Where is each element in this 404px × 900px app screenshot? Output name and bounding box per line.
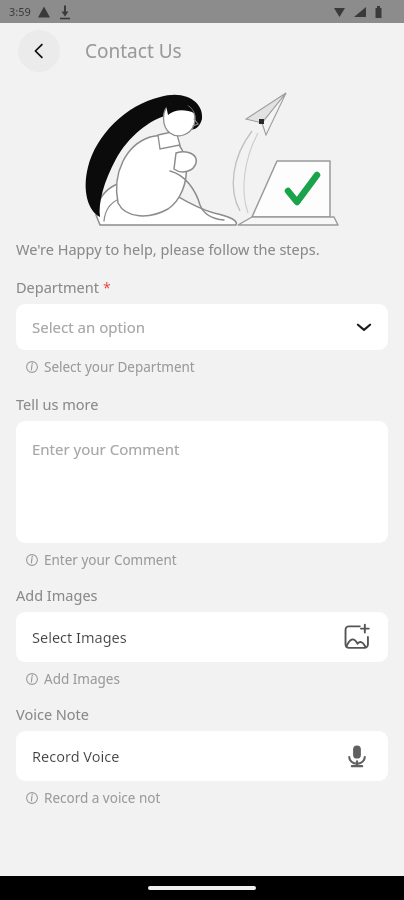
staticText: Add Images — [16, 585, 98, 605]
button[interactable]: Record Voice — [16, 731, 388, 781]
staticText: Contact Us — [85, 38, 182, 64]
staticText: Department — [16, 277, 99, 297]
staticText: Select your Department — [44, 358, 195, 376]
staticText: Tell us more — [16, 394, 99, 414]
staticText: Add Images — [44, 670, 120, 688]
staticText: Select Images — [32, 627, 127, 647]
button[interactable]: Select Images — [16, 612, 388, 662]
staticText: Record Voice — [32, 746, 120, 766]
staticText: We're Happy to help, please follow the s… — [16, 239, 320, 259]
button[interactable]: Enter your Comment — [16, 421, 388, 543]
other: Select Images — [342, 622, 372, 652]
staticText: Enter your Comment — [44, 551, 177, 569]
other: Record Voice — [342, 741, 372, 771]
staticText: Record a voice not — [44, 789, 161, 807]
staticText: Enter your Comment — [32, 439, 180, 459]
staticText: Voice Note — [16, 704, 90, 724]
staticText: Select an option — [32, 317, 146, 337]
button[interactable]: Back — [18, 30, 60, 72]
staticText: 3:59 — [9, 4, 31, 19]
button[interactable]: Select an option — [16, 304, 388, 350]
staticText: * — [103, 278, 111, 297]
